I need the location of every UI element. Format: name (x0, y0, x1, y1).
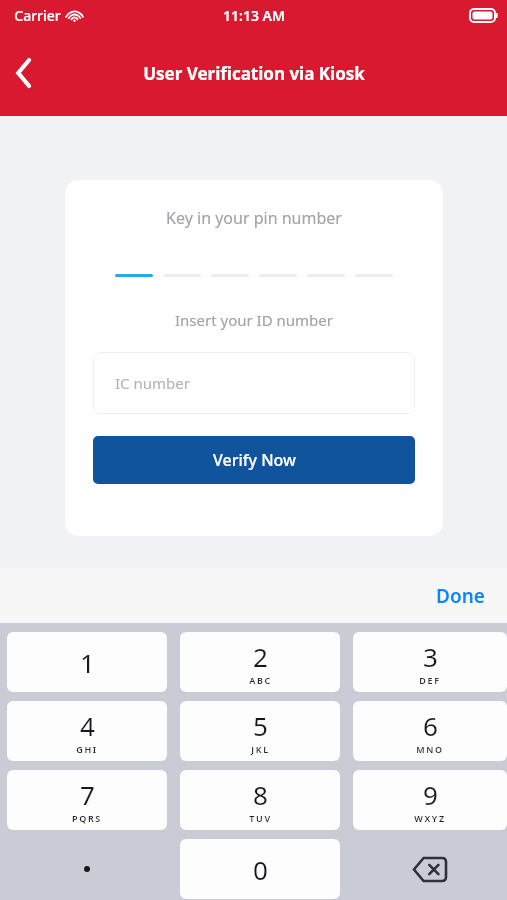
staticText: Key in your pin number (65, 207, 443, 229)
staticText: JKL (251, 743, 270, 755)
button[interactable]: Done (428, 577, 493, 615)
staticText: Done (436, 583, 485, 609)
staticText: 8 (253, 777, 268, 812)
staticText: 9 (423, 777, 438, 812)
staticText: ABC (249, 674, 272, 686)
button[interactable]: 2 (180, 632, 340, 692)
button[interactable]: 7 (7, 770, 167, 830)
staticText: 2 (253, 639, 268, 674)
staticText: Carrier (14, 6, 61, 25)
button[interactable]: Back (0, 49, 48, 97)
button[interactable]: 8 (180, 770, 340, 830)
button[interactable]: Verify Now (93, 436, 415, 484)
staticText: DEF (419, 674, 441, 686)
staticText: Insert your ID number (65, 310, 443, 330)
staticText: User Verification via Kiosk (143, 62, 365, 85)
staticText: 3 (423, 639, 438, 674)
staticText: PQRS (72, 812, 102, 824)
staticText: MNO (416, 743, 444, 755)
staticText: 6 (423, 708, 438, 743)
button[interactable]: 3 (353, 632, 507, 692)
staticText: 4 (80, 708, 95, 743)
button[interactable]: 5 (180, 701, 340, 761)
staticText: 11:13 AM (223, 6, 285, 25)
staticText: Verify Now (213, 449, 296, 471)
button[interactable]: IC number (93, 352, 415, 414)
staticText: WXYZ (414, 812, 446, 824)
staticText: 1 (80, 645, 95, 680)
button[interactable]: Backspace (353, 839, 507, 899)
button[interactable]: 4 (7, 701, 167, 761)
staticText: 0 (253, 852, 268, 887)
staticText: IC number (115, 373, 190, 393)
staticText: TUV (249, 812, 272, 824)
button[interactable]: 9 (353, 770, 507, 830)
staticText: 5 (253, 708, 268, 743)
staticText: 7 (80, 777, 95, 812)
staticText: GHI (76, 743, 98, 755)
button[interactable]: 1 (7, 632, 167, 692)
button[interactable]: Decimal point (7, 839, 167, 899)
button[interactable]: 6 (353, 701, 507, 761)
button[interactable]: 0 (180, 839, 340, 899)
